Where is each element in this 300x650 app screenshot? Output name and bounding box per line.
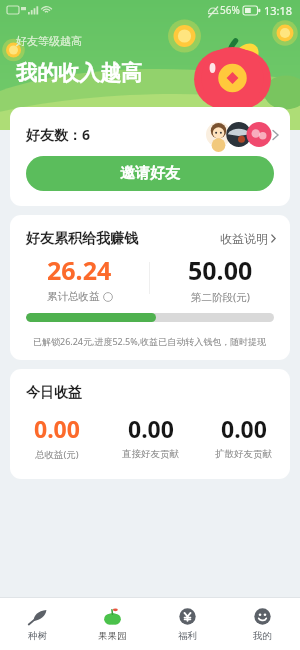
staticText: 直接好友贡献 bbox=[122, 448, 179, 460]
staticText: 好友数：6 bbox=[26, 125, 91, 144]
staticText: 我的收入越高 bbox=[16, 60, 142, 86]
staticText: 邀请好友 bbox=[120, 164, 180, 183]
staticText: 好友累积给我赚钱 bbox=[26, 230, 138, 248]
staticText: 0.00 bbox=[128, 413, 174, 444]
staticText: 0.00 bbox=[34, 413, 80, 444]
button[interactable]: 我的 bbox=[225, 598, 300, 650]
staticText: 扩散好友贡献 bbox=[215, 448, 272, 460]
staticText: 累计总收益 bbox=[47, 290, 100, 303]
staticText: 我的 bbox=[253, 630, 272, 642]
staticText: 好友等级越高 bbox=[16, 34, 82, 48]
staticText: 总收益(元) bbox=[35, 448, 79, 461]
staticText: 已解锁26.24元,进度52.5%,收益已自动转入钱包，随时提现 bbox=[33, 335, 267, 347]
staticText: 今日收益 bbox=[26, 384, 82, 402]
staticText: 种树 bbox=[28, 630, 47, 642]
button[interactable]: 好友数：6 bbox=[10, 107, 290, 156]
staticText: 26.24 bbox=[47, 253, 112, 287]
button[interactable]: 果果园 bbox=[75, 598, 150, 650]
button[interactable]: 收益说明 bbox=[217, 228, 279, 249]
button[interactable]: 邀请好友 bbox=[26, 156, 274, 191]
staticText: 福利 bbox=[178, 630, 197, 642]
staticText: 13:18 bbox=[264, 3, 293, 18]
button[interactable]: 福利 bbox=[150, 598, 225, 650]
staticText: 0.00 bbox=[221, 413, 267, 444]
staticText: 果果园 bbox=[98, 630, 127, 642]
staticText: 第二阶段(元) bbox=[191, 290, 250, 304]
staticText: 收益说明 bbox=[220, 231, 268, 246]
staticText: 50.00 bbox=[188, 253, 253, 287]
staticText: 56% bbox=[220, 3, 240, 17]
button[interactable]: 种树 bbox=[0, 598, 75, 650]
